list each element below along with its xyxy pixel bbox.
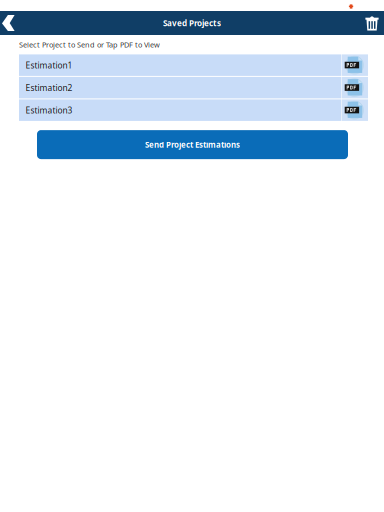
staticText: Select Project to Send or Tap PDF to Vie… bbox=[19, 40, 160, 50]
button[interactable]: Send Project Estimations bbox=[37, 130, 348, 159]
button[interactable]: Estimation2 bbox=[19, 77, 341, 98]
button[interactable]: Open Estimation1 PDF bbox=[342, 54, 368, 76]
button[interactable]: Estimation3 bbox=[19, 99, 341, 121]
staticText: Saved Projects bbox=[163, 17, 221, 29]
staticText: Estimation3 bbox=[25, 104, 72, 116]
button[interactable]: Delete bbox=[360, 11, 384, 35]
staticText: Estimation1 bbox=[25, 59, 72, 71]
staticText: Send Project Estimations bbox=[145, 139, 240, 150]
button[interactable]: Back bbox=[2, 11, 19, 35]
button[interactable]: Open Estimation2 PDF bbox=[342, 77, 368, 98]
button[interactable]: Open Estimation3 PDF bbox=[342, 99, 368, 121]
staticText: Estimation2 bbox=[25, 82, 72, 93]
button[interactable]: Estimation1 bbox=[19, 54, 341, 76]
